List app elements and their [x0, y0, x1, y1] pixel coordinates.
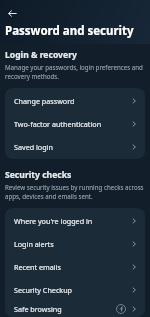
button[interactable]: Back	[5, 6, 19, 20]
staticText: Password and security	[5, 23, 134, 39]
staticText: Manage your passwords, login preferences…	[5, 63, 144, 81]
staticText: Security Checkup	[14, 285, 129, 295]
staticText: Saved login	[14, 142, 129, 152]
button[interactable]: Where you're logged in	[5, 209, 145, 232]
staticText: Login alerts	[14, 239, 129, 249]
staticText: Review security issues by running checks…	[5, 183, 144, 201]
button[interactable]: Saved login	[5, 135, 145, 158]
staticText: Recent emails	[14, 262, 129, 272]
staticText: Change password	[14, 96, 129, 106]
button[interactable]: Security Checkup	[5, 278, 145, 301]
button[interactable]: Recent emails	[5, 255, 145, 278]
staticText: Safe browsing	[14, 304, 116, 314]
staticText: Where you're logged in	[14, 216, 129, 226]
button[interactable]: Login alerts	[5, 232, 145, 255]
button[interactable]: Safe browsing	[5, 301, 145, 316]
staticText: Two-factor authentication	[14, 119, 129, 129]
button[interactable]: Change password	[5, 89, 145, 112]
button[interactable]: Two-factor authentication	[5, 112, 145, 135]
staticText: Security checks	[5, 169, 72, 181]
staticText: Login & recovery	[5, 49, 77, 61]
